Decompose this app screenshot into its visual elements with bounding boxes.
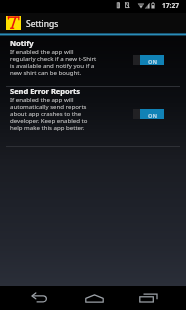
- button[interactable]: Toggle: [133, 54, 164, 65]
- staticText: Settings: [26, 18, 59, 30]
- staticText: Notify: [10, 38, 34, 48]
- button[interactable]: Toggle: [133, 108, 164, 119]
- button[interactable]: Home: [76, 286, 112, 310]
- button[interactable]: Recents: [130, 286, 166, 310]
- button[interactable]: Back: [21, 286, 57, 310]
- staticText: If enabled the app will automatically se…: [10, 95, 88, 131]
- staticText: ON: [148, 58, 157, 66]
- staticText: ON: [148, 112, 157, 120]
- button[interactable]: Send Error Reports: [0, 86, 186, 146]
- staticText: If enabled the app will regularly check …: [10, 47, 97, 76]
- staticText: 17:27: [162, 1, 179, 10]
- staticText: Send Error Reports: [10, 86, 81, 96]
- button[interactable]: Notify: [0, 36, 186, 96]
